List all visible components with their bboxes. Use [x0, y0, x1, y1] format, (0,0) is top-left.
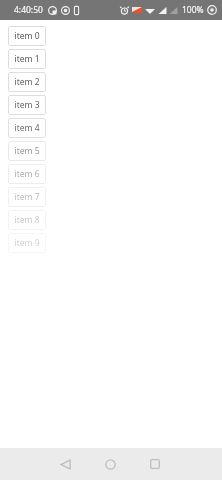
button[interactable]: item 8	[8, 210, 46, 230]
button[interactable]: item 3	[8, 95, 46, 115]
button[interactable]: item 5	[8, 141, 46, 161]
button[interactable]: item 1	[8, 49, 46, 69]
staticText: item 2	[14, 76, 40, 88]
staticText: item 7	[14, 191, 40, 203]
staticText: 4:40:50	[14, 4, 43, 16]
staticText: item 9	[14, 237, 40, 249]
button[interactable]: Home	[93, 448, 127, 480]
button[interactable]: item 4	[8, 118, 46, 138]
staticText: item 6	[14, 168, 40, 180]
staticText: item 5	[14, 145, 40, 157]
staticText: item 3	[14, 99, 40, 111]
button[interactable]: item 7	[8, 187, 46, 207]
staticText: item 0	[14, 30, 40, 42]
staticText: item 4	[14, 122, 40, 134]
staticText: item 1	[14, 53, 40, 65]
staticText: 100%	[182, 4, 204, 16]
button[interactable]: item 6	[8, 164, 46, 184]
button[interactable]: item 0	[8, 26, 46, 46]
button[interactable]: item 9	[8, 233, 46, 253]
button[interactable]: Recent apps	[138, 448, 172, 480]
button[interactable]: item 2	[8, 72, 46, 92]
button[interactable]: Back	[48, 448, 82, 480]
staticText: item 8	[14, 214, 40, 226]
